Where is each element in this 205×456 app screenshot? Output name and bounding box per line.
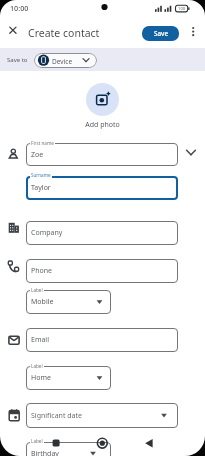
button[interactable] <box>46 433 66 453</box>
staticText: Surname <box>31 172 51 178</box>
button[interactable] <box>86 83 119 116</box>
button[interactable] <box>139 433 159 453</box>
staticText: Label <box>31 287 43 293</box>
button[interactable] <box>183 145 199 161</box>
staticText: Zoe <box>31 150 44 160</box>
staticText: Home <box>31 373 51 383</box>
staticText: Create contact <box>28 26 100 40</box>
staticText: Mobile <box>31 297 54 307</box>
button[interactable]: Save <box>142 26 179 41</box>
staticText: First name <box>31 140 54 146</box>
button[interactable]: Home <box>26 366 111 390</box>
button[interactable]: Mobile <box>26 290 111 314</box>
button[interactable] <box>34 53 97 68</box>
staticText: Label <box>31 438 43 444</box>
staticText: Save <box>154 29 168 38</box>
staticText: Significant date <box>31 411 82 421</box>
button[interactable] <box>187 25 200 41</box>
staticText: Save to <box>7 56 28 64</box>
button[interactable]: Birthday <box>26 442 111 456</box>
staticText: Company <box>31 228 63 238</box>
staticText: Birthday <box>31 449 59 456</box>
button[interactable]: Phone <box>26 259 178 283</box>
staticText: 100 <box>178 6 186 12</box>
button[interactable] <box>5 23 21 39</box>
staticText: Email <box>31 335 49 345</box>
staticText: Taylor <box>31 183 51 193</box>
button[interactable]: Significant date <box>26 403 178 428</box>
button[interactable]: Email <box>26 328 178 352</box>
staticText: Device <box>52 57 73 66</box>
staticText: Phone <box>31 266 53 276</box>
button[interactable]: Zoe <box>26 143 178 166</box>
staticText: 10:00 <box>10 3 29 13</box>
button[interactable]: Add photo <box>0 120 205 130</box>
button[interactable]: Taylor <box>26 176 178 200</box>
staticText: Label <box>31 363 43 369</box>
button[interactable]: Company <box>26 221 178 245</box>
button[interactable] <box>92 433 112 453</box>
